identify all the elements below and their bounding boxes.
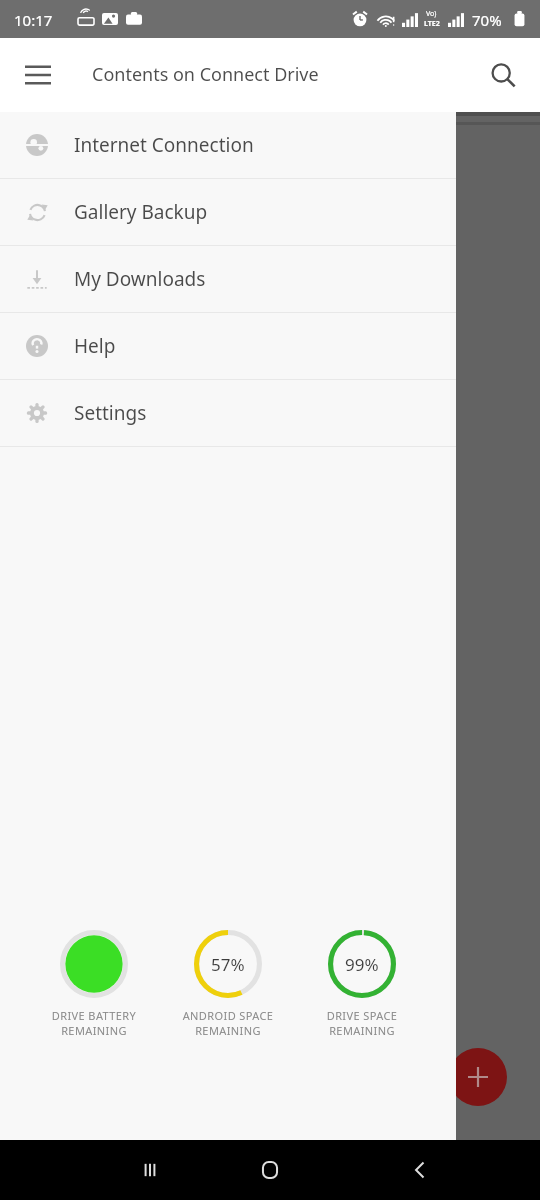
button[interactable]: My Downloads — [0, 246, 456, 312]
button[interactable]: Gallery Backup — [0, 179, 456, 245]
button[interactable]: Search — [475, 47, 531, 103]
staticText: Internet Connection — [74, 132, 254, 158]
staticText: 10:17 — [14, 10, 53, 30]
button[interactable]: Help — [0, 313, 456, 379]
staticText: ANDROID SPACE — [168, 1008, 288, 1023]
button[interactable]: Home — [210, 1140, 330, 1200]
staticText: Contents on Connect Drive — [92, 62, 319, 87]
button[interactable]: Settings — [0, 380, 456, 446]
button[interactable]: Back — [360, 1140, 480, 1200]
staticText: My Downloads — [74, 266, 206, 292]
staticText: LTE2 — [424, 19, 440, 29]
staticText: REMAINING — [302, 1023, 422, 1038]
button[interactable]: Internet Connection — [0, 112, 456, 178]
staticText: 70% — [472, 10, 502, 30]
staticText: DRIVE BATTERY — [34, 1008, 154, 1023]
button[interactable]: Add — [449, 1048, 507, 1106]
staticText: 99% — [345, 953, 379, 976]
staticText: Help — [74, 333, 116, 359]
staticText: REMAINING — [34, 1023, 154, 1038]
staticText: Gallery Backup — [74, 199, 208, 225]
staticText: 57% — [211, 953, 245, 976]
staticText: Settings — [74, 400, 147, 426]
button[interactable]: Open navigation drawer — [10, 47, 66, 103]
staticText: Vo) — [426, 9, 437, 19]
button[interactable]: Recent apps — [90, 1140, 210, 1200]
staticText: DRIVE SPACE — [302, 1008, 422, 1023]
staticText: REMAINING — [168, 1023, 288, 1038]
